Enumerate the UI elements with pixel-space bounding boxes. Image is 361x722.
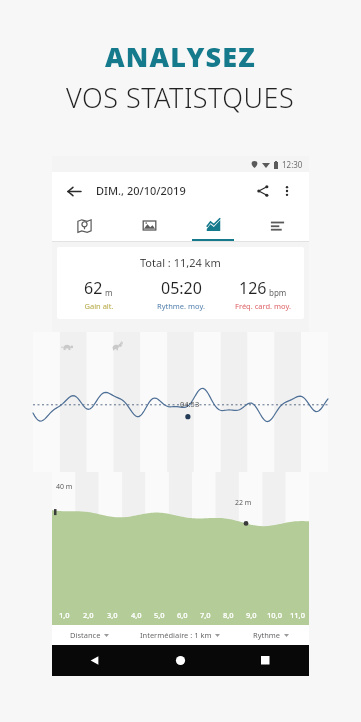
button[interactable]: Total : 11,24 km — [57, 247, 304, 319]
button[interactable]: Share — [251, 179, 275, 203]
staticText: Total : 11,24 km — [140, 255, 221, 270]
staticText: 3,0 — [107, 610, 118, 620]
staticText: Rythme. moy. — [157, 301, 205, 311]
staticText: 22 m — [235, 498, 252, 508]
button[interactable]: 40 m — [52, 470, 309, 625]
staticText: 1,0 — [59, 610, 70, 620]
staticText: 4,0 — [131, 610, 142, 620]
button[interactable]: Details tab — [245, 209, 309, 241]
button[interactable]: Rythme — [233, 625, 309, 645]
staticText: VOS STATISTQUES — [66, 79, 295, 116]
staticText: 40 m — [56, 482, 73, 492]
staticText: 5,0 — [154, 610, 165, 620]
staticText: Fréq. card. moy. — [235, 301, 291, 311]
button[interactable]: Photos tab — [117, 209, 181, 241]
staticText: 7,0 — [200, 610, 211, 620]
staticText: 04:53 — [180, 399, 200, 409]
button[interactable]: Recent apps — [223, 645, 309, 676]
staticText: 126 — [239, 277, 267, 299]
button[interactable]: Back — [52, 645, 137, 676]
button[interactable]: Home — [137, 645, 223, 676]
staticText: 6,0 — [177, 610, 188, 620]
button[interactable]: Intermédiaire : 1 km — [127, 625, 233, 645]
staticText: DIM., 20/10/2019 — [96, 183, 186, 198]
staticText: 12:30 — [282, 159, 303, 170]
button[interactable]: 04:53 — [33, 332, 328, 472]
staticText: 62 — [84, 277, 103, 299]
staticText: Rythme — [253, 630, 281, 640]
staticText: 10,0 — [267, 610, 282, 620]
button[interactable]: Distance — [52, 625, 127, 645]
staticText: 2,0 — [83, 610, 94, 620]
staticText: 11,0 — [290, 610, 305, 620]
button[interactable]: Back — [62, 179, 86, 203]
staticText: 05:20 — [161, 277, 202, 299]
staticText: bpm — [269, 287, 287, 298]
staticText: Gain alt. — [84, 301, 114, 311]
staticText: 9,0 — [246, 610, 257, 620]
staticText: Distance — [70, 630, 101, 640]
staticText: m — [105, 287, 113, 298]
button[interactable]: Charts tab — [181, 209, 245, 241]
button[interactable]: More options — [275, 179, 299, 203]
staticText: 8,0 — [223, 610, 234, 620]
staticText: Intermédiaire : 1 km — [140, 630, 212, 640]
button[interactable]: Map tab — [52, 209, 117, 241]
staticText: ANALYSEZ — [105, 38, 257, 75]
